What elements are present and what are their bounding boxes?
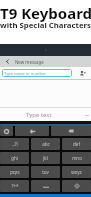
button[interactable]: wxyz bbox=[62, 166, 91, 178]
staticText: New message bbox=[15, 59, 44, 65]
staticText: ?+* bbox=[11, 183, 19, 189]
button[interactable]: Type text bbox=[0, 108, 91, 121]
staticText: def bbox=[73, 141, 80, 147]
staticText: ghi bbox=[11, 155, 18, 161]
staticText: wxyz bbox=[71, 169, 82, 175]
button[interactable]: Enter bbox=[15, 126, 49, 136]
staticText: Type name or number bbox=[4, 71, 46, 76]
button[interactable]: jkl bbox=[31, 152, 60, 164]
staticText: jkl bbox=[43, 155, 48, 161]
staticText: .,?! bbox=[12, 141, 18, 147]
staticText: pqrs bbox=[10, 169, 20, 175]
staticText: mno bbox=[72, 155, 82, 161]
staticText: Type text bbox=[26, 111, 52, 119]
button[interactable]: .,?! bbox=[0, 138, 29, 150]
button[interactable]: ?+* bbox=[0, 180, 29, 192]
staticText: T9 Keyboard bbox=[0, 3, 91, 23]
button[interactable]: tuv bbox=[31, 166, 60, 178]
button[interactable]: Space bbox=[31, 180, 60, 192]
button[interactable]: pqrs bbox=[0, 166, 29, 178]
staticText: tuv bbox=[42, 169, 49, 175]
button[interactable]: Settings bbox=[0, 126, 13, 136]
staticText: with Special Characters bbox=[0, 20, 91, 31]
staticText: abc bbox=[42, 141, 50, 147]
button[interactable]: Add contact bbox=[76, 67, 88, 79]
button[interactable]: Symbols bbox=[62, 180, 91, 192]
button[interactable]: Send bbox=[82, 108, 91, 121]
button[interactable]: def bbox=[62, 138, 91, 150]
button[interactable]: ghi bbox=[0, 152, 29, 164]
button[interactable]: Back bbox=[0, 56, 15, 67]
button[interactable]: Backspace bbox=[51, 126, 91, 136]
button[interactable]: mno bbox=[62, 152, 91, 164]
button[interactable]: abc bbox=[31, 138, 60, 150]
button[interactable]: Type name or number bbox=[2, 69, 72, 77]
